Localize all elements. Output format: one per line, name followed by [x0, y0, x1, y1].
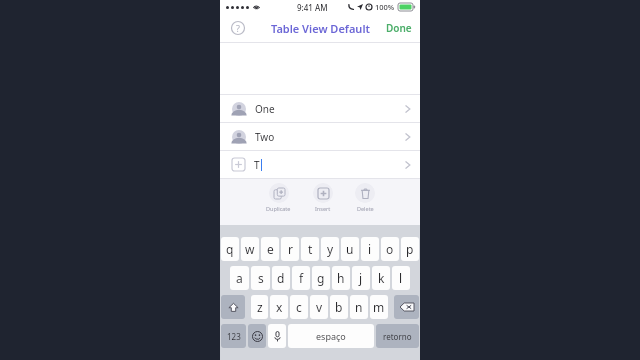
staticText: g	[317, 270, 325, 286]
button[interactable]: v	[310, 295, 328, 319]
staticText: ?	[236, 22, 240, 34]
button[interactable]: x	[270, 295, 288, 319]
staticText: p	[406, 241, 414, 257]
staticText: d	[277, 270, 285, 286]
button[interactable]: o	[381, 237, 399, 261]
button[interactable]: i	[361, 237, 379, 261]
button[interactable]: Emoji	[248, 324, 266, 348]
button[interactable]: espaço	[288, 324, 374, 348]
button[interactable]: p	[401, 237, 419, 261]
button[interactable]: Insert	[313, 183, 333, 212]
staticText: Duplicate	[266, 205, 291, 212]
staticText: T	[254, 158, 260, 172]
button[interactable]: c	[290, 295, 308, 319]
button[interactable]: Delete	[355, 183, 375, 212]
button[interactable]: r	[281, 237, 299, 261]
staticText: n	[355, 299, 363, 315]
staticText: espaço	[316, 330, 346, 342]
staticText: i	[368, 241, 372, 257]
button[interactable]: Two	[220, 123, 420, 150]
staticText: l	[399, 270, 403, 286]
staticText: c	[296, 299, 302, 315]
staticText: 123	[227, 331, 241, 342]
button[interactable]: Help	[229, 19, 247, 37]
staticText: v	[316, 299, 323, 315]
button[interactable]: Done	[386, 21, 412, 35]
button[interactable]: g	[312, 266, 330, 290]
button[interactable]: q	[221, 237, 239, 261]
staticText: h	[337, 270, 345, 286]
button[interactable]: l	[392, 266, 410, 290]
button[interactable]: w	[241, 237, 259, 261]
staticText: u	[346, 241, 354, 257]
staticText: w	[245, 241, 255, 257]
staticText: Delete	[357, 205, 374, 212]
staticText: e	[267, 241, 274, 257]
staticText: o	[386, 241, 394, 257]
button[interactable]: T	[220, 151, 420, 178]
staticText: x	[276, 299, 283, 315]
staticText: z	[257, 299, 263, 315]
button[interactable]: s	[251, 266, 270, 290]
staticText: k	[378, 270, 385, 286]
staticText: Table View Default	[271, 21, 370, 36]
button[interactable]: Shift	[221, 295, 245, 319]
button[interactable]: b	[330, 295, 348, 319]
staticText: j	[359, 270, 363, 286]
button[interactable]: y	[321, 237, 339, 261]
button[interactable]: n	[350, 295, 368, 319]
staticText: One	[255, 102, 275, 116]
staticText: b	[335, 299, 343, 315]
staticText: m	[373, 299, 385, 315]
staticText: y	[327, 241, 334, 257]
staticText: t	[308, 241, 313, 257]
staticText: retorno	[383, 331, 412, 342]
button[interactable]: Duplicate	[266, 183, 291, 212]
button[interactable]: z	[251, 295, 268, 319]
staticText: Two	[255, 130, 275, 144]
staticText: f	[299, 270, 304, 286]
button[interactable]: j	[352, 266, 370, 290]
button[interactable]: retorno	[376, 324, 419, 348]
staticText: 100%	[375, 2, 395, 12]
button[interactable]: t	[301, 237, 319, 261]
button[interactable]: d	[272, 266, 290, 290]
button[interactable]: f	[292, 266, 310, 290]
button[interactable]: Backspace	[394, 295, 419, 319]
button[interactable]: h	[332, 266, 350, 290]
button[interactable]: Dictate	[268, 324, 286, 348]
staticText: 9:41 AM	[297, 2, 328, 13]
button[interactable]: u	[341, 237, 359, 261]
staticText: q	[226, 241, 234, 257]
button[interactable]: k	[372, 266, 390, 290]
staticText: s	[258, 270, 264, 286]
button[interactable]: a	[230, 266, 249, 290]
button[interactable]: 123	[221, 324, 246, 348]
button[interactable]: m	[370, 295, 388, 319]
staticText: Insert	[315, 205, 331, 212]
staticText: Done	[386, 21, 412, 35]
button[interactable]: e	[261, 237, 279, 261]
staticText: r	[288, 241, 293, 257]
staticText: a	[236, 270, 243, 286]
button[interactable]: One	[220, 95, 420, 122]
